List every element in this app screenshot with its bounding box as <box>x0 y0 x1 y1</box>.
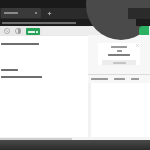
button[interactable] <box>90 77 109 81</box>
button[interactable]: Contrast <box>14 27 22 35</box>
button[interactable]: Block <box>3 27 11 35</box>
button[interactable]: Close tab <box>34 11 38 15</box>
button[interactable] <box>42 27 150 35</box>
button[interactable] <box>0 19 150 26</box>
button[interactable] <box>26 28 40 35</box>
button[interactable] <box>130 77 140 81</box>
button[interactable]: Close tab <box>1 8 41 18</box>
button[interactable]: Close <box>98 43 140 65</box>
button[interactable]: New tab <box>45 9 53 17</box>
button[interactable] <box>102 60 136 65</box>
button[interactable]: Close <box>136 44 139 47</box>
button[interactable] <box>113 77 126 81</box>
